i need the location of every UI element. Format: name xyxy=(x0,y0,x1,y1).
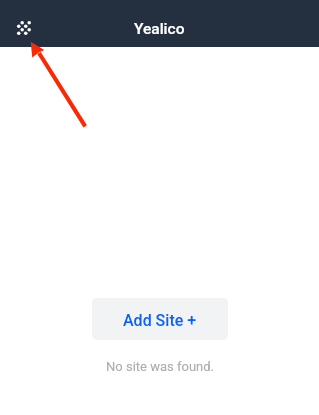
button[interactable]: Apps xyxy=(0,4,47,51)
staticText: Yealico xyxy=(134,20,185,38)
button[interactable]: Add Site + xyxy=(92,298,228,340)
staticText: No site was found. xyxy=(106,359,214,374)
staticText: Add Site + xyxy=(123,311,197,330)
